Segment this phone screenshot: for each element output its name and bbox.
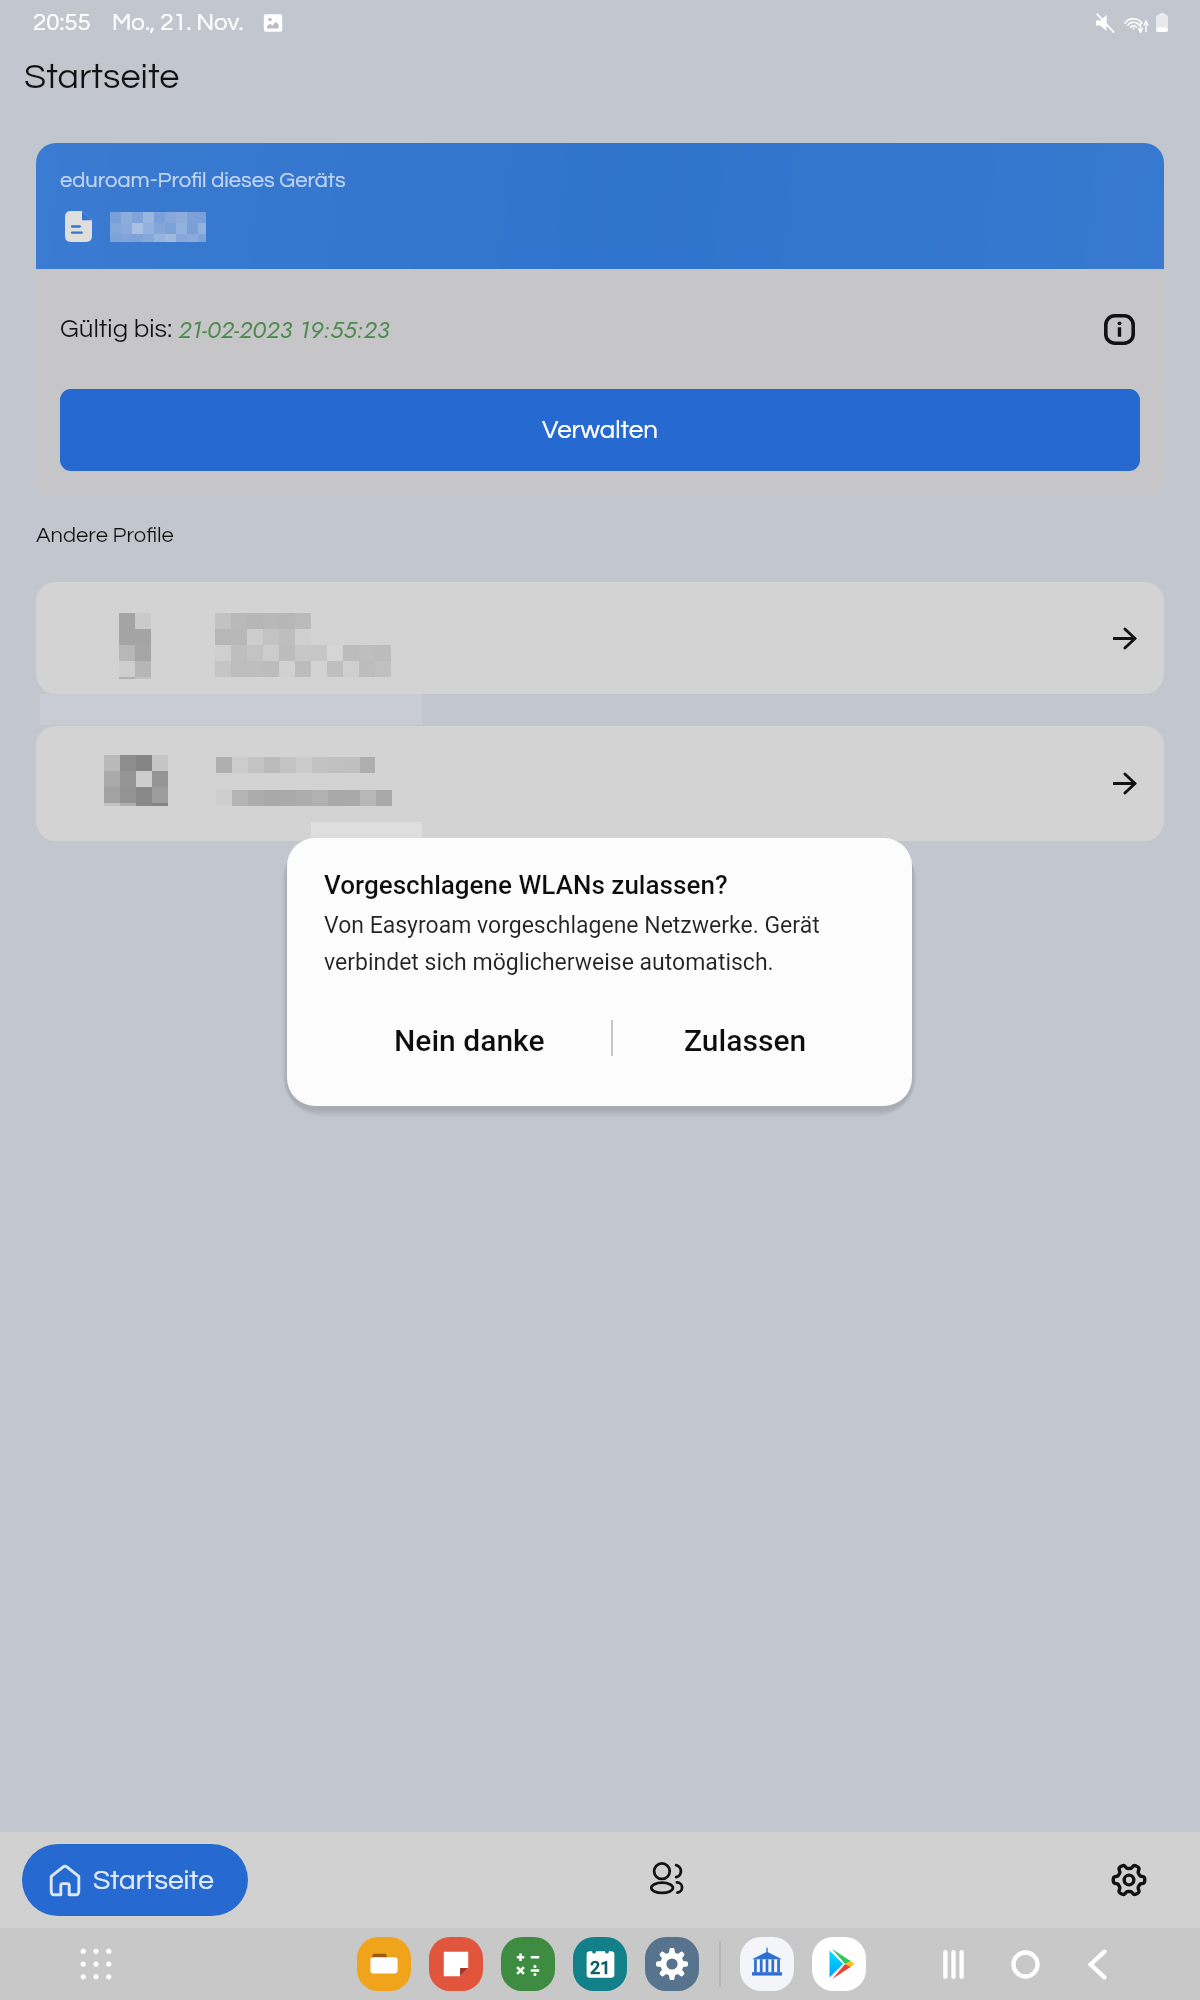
button[interactable]: App [357, 1937, 411, 1991]
button[interactable]: Zulassen [678, 1004, 812, 1076]
button[interactable]: Recents [925, 1936, 981, 1992]
staticText: Zulassen [684, 1023, 807, 1058]
staticText: Startseite [24, 58, 180, 95]
button[interactable]: App [740, 1937, 794, 1991]
staticText: 21 [590, 1957, 611, 1978]
staticText: Von Easyroam vorgeschlagene Netzwerke. G… [324, 912, 820, 975]
button[interactable]: App [645, 1937, 699, 1991]
button[interactable]: Verwalten [60, 389, 1140, 471]
button[interactable]: Startseite [22, 1844, 248, 1916]
staticText: Gültig bis: [60, 316, 178, 343]
staticText: Verwalten [542, 417, 658, 444]
button[interactable]: Nein danke [389, 1004, 549, 1076]
staticText: 21-02-2023 19:55:23 [178, 312, 390, 347]
button[interactable] [36, 582, 1164, 694]
button[interactable]: Info [1104, 314, 1135, 345]
button[interactable]: Profile [631, 1844, 703, 1916]
button[interactable] [36, 726, 1164, 841]
button[interactable]: Home [997, 1936, 1053, 1992]
staticText: Startseite [93, 1866, 214, 1895]
button[interactable]: Calendar [573, 1937, 627, 1991]
staticText: Vorgeschlagene WLANs zulassen? [324, 870, 728, 900]
staticText: 20:55 [33, 10, 91, 35]
button[interactable]: App [501, 1937, 555, 1991]
staticText: Andere Profile [36, 524, 174, 547]
button[interactable]: Settings [1098, 1849, 1160, 1911]
staticText: eduroam-Profil dieses Geräts [60, 169, 346, 192]
button[interactable]: Apps [64, 1932, 128, 1996]
button[interactable]: App [429, 1937, 483, 1991]
staticText: Nein danke [394, 1023, 545, 1058]
button[interactable]: App [812, 1937, 866, 1991]
staticText: Mo., 21. Nov. [112, 10, 244, 35]
button[interactable]: Back [1069, 1936, 1125, 1992]
